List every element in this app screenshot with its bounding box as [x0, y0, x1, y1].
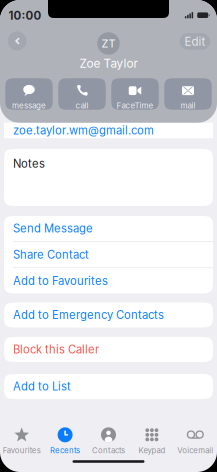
button[interactable]: Send Message	[4, 216, 213, 241]
staticText: Favourites	[3, 446, 41, 455]
staticText: Notes	[13, 157, 45, 171]
button[interactable]: call	[58, 78, 106, 110]
staticText: message	[12, 101, 46, 110]
button[interactable]: Back	[5, 29, 29, 53]
staticText: 10:00	[8, 9, 41, 22]
staticText: Voicemail	[177, 446, 213, 455]
staticText: Add to Favourites	[13, 274, 108, 288]
button[interactable]: mail	[164, 78, 212, 110]
button[interactable]: Share Contact	[4, 242, 213, 267]
button[interactable]: Favourites	[0, 426, 43, 456]
button[interactable]: FaceTime	[111, 78, 159, 110]
button[interactable]: zoe.taylor.wm@gmail.com	[4, 123, 213, 138]
staticText: Add to List	[13, 380, 71, 393]
button[interactable]: Edit	[180, 33, 210, 50]
staticText: Recents	[50, 446, 80, 455]
staticText: FaceTime	[116, 101, 153, 110]
staticText: call	[75, 101, 88, 110]
staticText: Block this Caller	[13, 343, 99, 356]
button[interactable]: Keypad	[130, 426, 174, 456]
staticText: Keypad	[138, 446, 165, 455]
button[interactable]: Add to Favourites	[4, 268, 213, 294]
button[interactable]: Contacts	[87, 426, 130, 456]
button[interactable]: message	[5, 78, 53, 110]
button[interactable]: Block this Caller	[4, 337, 213, 362]
staticText: Add to Emergency Contacts	[13, 308, 164, 322]
staticText: ZT	[101, 37, 115, 50]
staticText: zoe.taylor.wm@gmail.com	[13, 124, 154, 137]
button[interactable]: Voicemail	[174, 426, 217, 456]
staticText: mail	[180, 101, 195, 110]
button[interactable]: Recents	[43, 426, 87, 456]
staticText: Edit	[184, 35, 205, 48]
staticText: Contacts	[92, 446, 125, 455]
staticText: Send Message	[13, 222, 93, 235]
button[interactable]: Add to List	[4, 374, 213, 399]
staticText: Share Contact	[13, 248, 89, 261]
button[interactable]: Add to Emergency Contacts	[4, 302, 213, 327]
staticText: Zoe Taylor	[79, 56, 137, 71]
